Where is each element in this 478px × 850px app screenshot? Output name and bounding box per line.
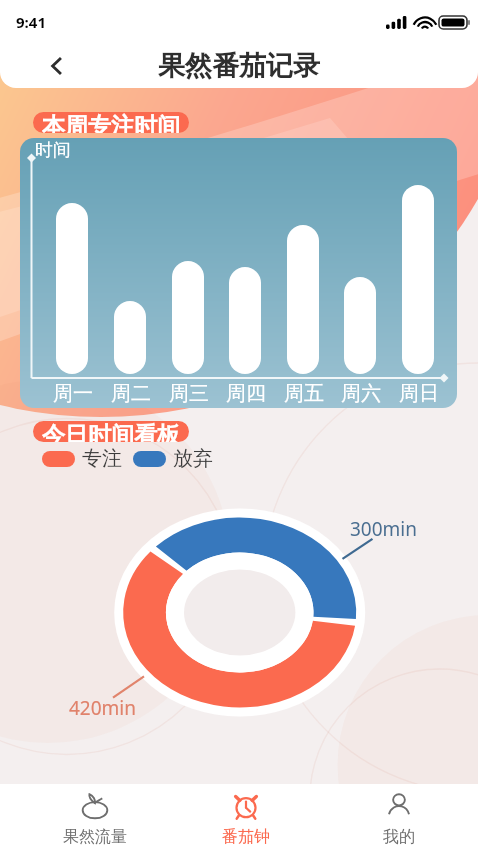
staticText: 420min [69, 695, 137, 721]
staticText: 300min [350, 516, 418, 542]
staticText: 放弃 [173, 446, 213, 471]
staticText: 周五 [284, 381, 324, 406]
staticText: 专注 [82, 446, 122, 471]
staticText: 周六 [341, 381, 381, 406]
staticText: 今日时间看板 [42, 421, 180, 442]
staticText: 果然流量 [63, 827, 127, 847]
staticText: 周一 [53, 381, 93, 406]
staticText: 周三 [169, 381, 209, 406]
staticText: 果然番茄记录 [158, 49, 320, 83]
staticText: 我的 [383, 827, 415, 847]
staticText: 时间 [35, 139, 71, 162]
button[interactable]: 我的 [324, 784, 474, 850]
button[interactable]: Back [40, 49, 74, 83]
staticText: 9:41 [16, 12, 46, 32]
staticText: 番茄钟 [222, 827, 270, 847]
staticText: 周二 [111, 381, 151, 406]
staticText: 周日 [399, 381, 439, 406]
staticText: 周四 [226, 381, 266, 406]
button[interactable]: 番茄钟 [171, 784, 321, 850]
staticText: 本周专注时间 [42, 112, 180, 133]
button[interactable]: 果然流量 [20, 784, 170, 850]
